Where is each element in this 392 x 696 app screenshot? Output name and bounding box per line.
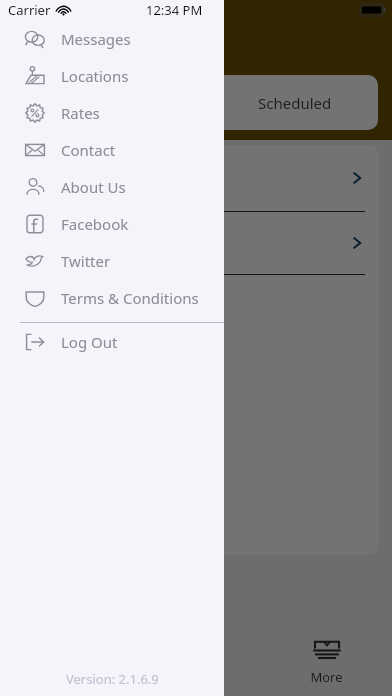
button[interactable]: Deposit bbox=[0, 624, 130, 696]
button[interactable]: Terms and Conditions bbox=[0, 279, 224, 316]
button[interactable]: Bill Pay bbox=[130, 624, 261, 696]
button[interactable]: Locations bbox=[0, 57, 224, 94]
button[interactable] bbox=[6, 145, 379, 211]
staticText: Rates bbox=[61, 103, 100, 123]
button[interactable]: Twitter bbox=[0, 242, 224, 279]
button[interactable]: Scheduled bbox=[170, 75, 378, 130]
staticText: Terms & Conditions bbox=[61, 288, 199, 308]
staticText: 12:34 PM bbox=[146, 1, 203, 19]
staticText: Locations bbox=[61, 66, 129, 86]
staticText: Carrier bbox=[8, 1, 51, 19]
button[interactable]: More bbox=[261, 624, 392, 696]
staticText: Deposit bbox=[42, 668, 89, 686]
staticText: Version: 2.1.6.9 bbox=[66, 670, 159, 688]
staticText: Scheduled bbox=[258, 93, 332, 113]
staticText: Facebook bbox=[61, 214, 129, 234]
staticText: More bbox=[310, 668, 343, 686]
staticText: Log Out bbox=[61, 332, 118, 352]
staticText: Contact bbox=[61, 140, 116, 160]
staticText: Messages bbox=[61, 29, 131, 49]
button[interactable]: Messages bbox=[0, 20, 224, 57]
button[interactable]: Facebook bbox=[0, 205, 224, 242]
button[interactable]: About Us bbox=[0, 168, 224, 205]
button[interactable] bbox=[6, 212, 379, 274]
button[interactable]: Contact bbox=[0, 131, 224, 168]
staticText: About Us bbox=[61, 177, 126, 197]
staticText: Twitter bbox=[61, 251, 111, 271]
button[interactable]: Rates bbox=[0, 94, 224, 131]
button[interactable]: Log Out bbox=[0, 323, 224, 360]
